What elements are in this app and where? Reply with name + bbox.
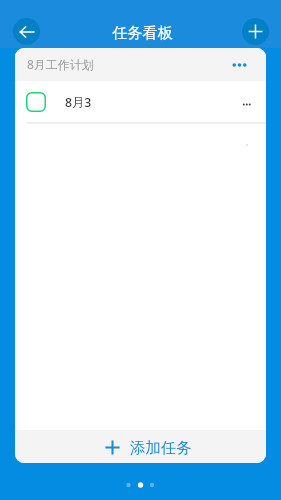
staticText: 添加任务 — [130, 438, 192, 457]
staticText: 8月工作计划 — [27, 56, 94, 72]
button[interactable]: Board options — [228, 53, 252, 77]
button[interactable]: Task options — [235, 90, 261, 116]
button[interactable]: Add board — [242, 18, 269, 45]
staticText: 8月3 — [65, 94, 92, 111]
button[interactable]: Back — [13, 18, 40, 45]
button[interactable]: 8月3 — [15, 81, 266, 124]
button[interactable]: 添加任务 — [15, 430, 266, 463]
staticText: 任务看板 — [2, 23, 281, 42]
